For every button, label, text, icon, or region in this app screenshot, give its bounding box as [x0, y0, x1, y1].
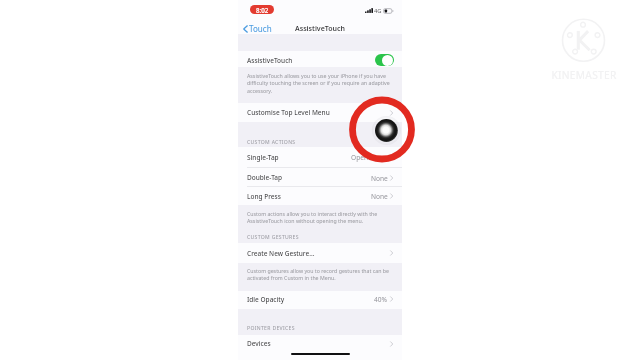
staticText: 8:02	[256, 6, 269, 14]
staticText: Touch	[249, 23, 272, 34]
staticText: Idle Opacity	[247, 295, 285, 304]
staticText: 4G	[374, 7, 382, 14]
staticText: CUSTOM GESTURES	[247, 234, 299, 241]
staticText: Double-Tap	[247, 173, 283, 182]
staticText: AssistiveTouch allows you to use your iP…	[247, 72, 393, 95]
staticText: Create New Gesture...	[247, 249, 315, 258]
button[interactable]: Double-Tap	[238, 167, 402, 186]
button[interactable]: Customise Top Level Menu	[238, 103, 402, 122]
staticText: 40%	[374, 295, 388, 304]
staticText: CUSTOM ACTIONS	[247, 139, 296, 146]
staticText: KINEMASTER	[551, 68, 617, 81]
staticText: Long Press	[247, 192, 281, 201]
button[interactable]: Create New Gesture...	[238, 243, 402, 263]
staticText: Custom actions allow you to interact dir…	[247, 210, 387, 225]
staticText: Devices	[247, 339, 271, 348]
staticText: Single-Tap	[247, 153, 279, 162]
staticText: None	[371, 192, 388, 201]
staticText: AssistiveTouch	[247, 56, 293, 65]
button[interactable]: AssistiveTouch	[238, 51, 402, 67]
staticText: None	[371, 174, 388, 183]
button[interactable]: Devices	[238, 335, 402, 354]
staticText: Custom gestures allow you to record gest…	[247, 267, 393, 282]
button[interactable]: Idle Opacity	[238, 292, 402, 309]
button[interactable]: Single-Tap	[238, 147, 402, 167]
button[interactable]: AssistiveTouch toggle	[375, 54, 394, 66]
button[interactable]: Long Press	[238, 186, 402, 205]
staticText: Customise Top Level Menu	[247, 108, 330, 117]
button[interactable]: Touch	[243, 22, 272, 35]
staticText: AssistiveTouch	[295, 24, 346, 34]
staticText: POINTER DEVICES	[247, 325, 295, 332]
staticText: Open Menu	[351, 153, 388, 162]
